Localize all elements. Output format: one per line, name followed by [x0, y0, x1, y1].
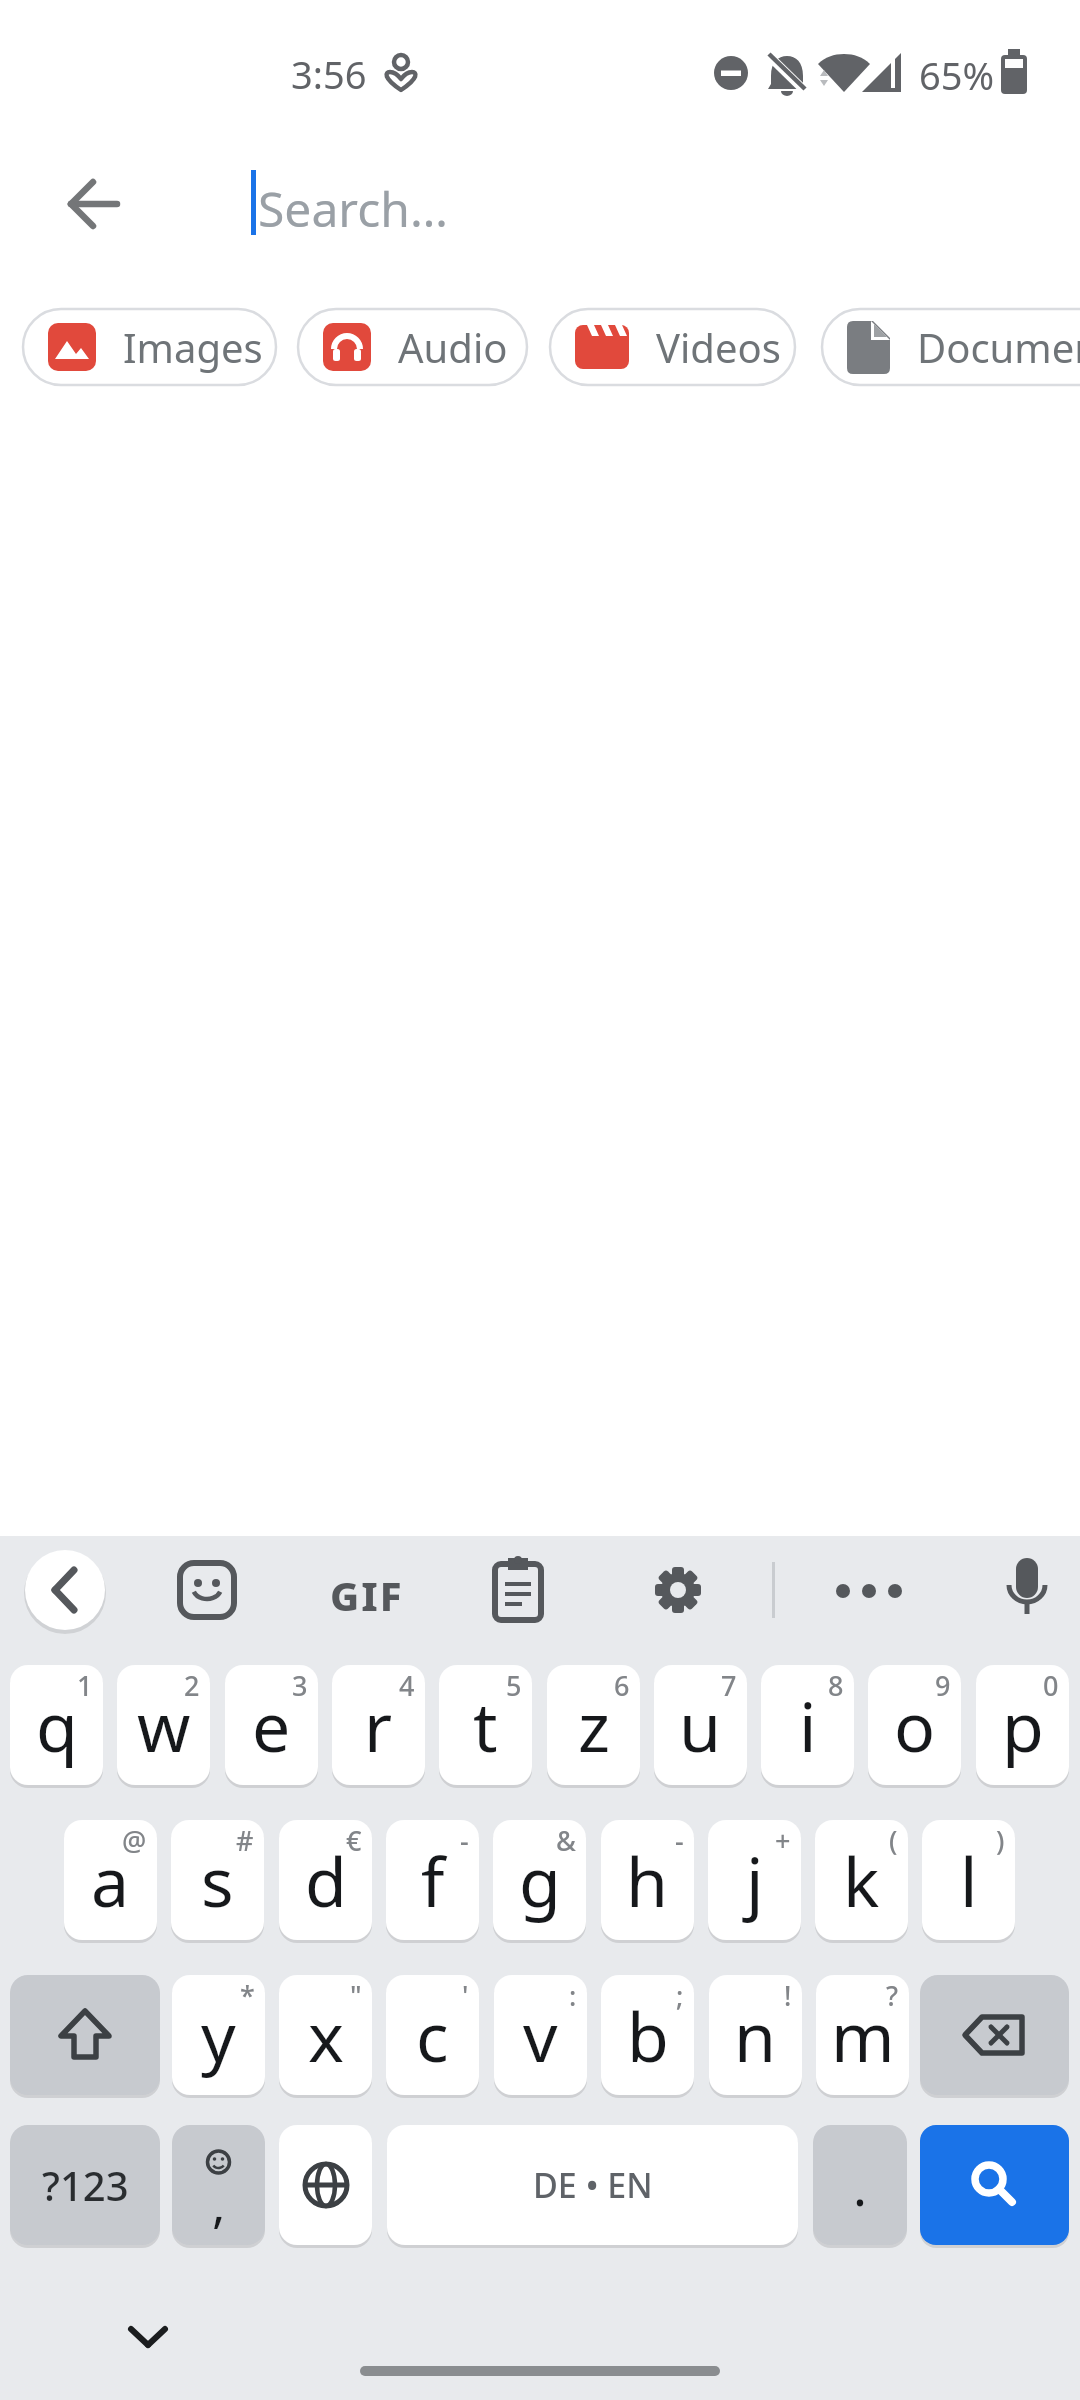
- staticText: k: [843, 1834, 880, 1927]
- button[interactable]: w: [117, 1665, 210, 1785]
- staticText: 7: [721, 1667, 737, 1704]
- staticText: r: [364, 1679, 393, 1772]
- button[interactable]: [987, 1550, 1067, 1630]
- button[interactable]: p: [976, 1665, 1069, 1785]
- staticText: d: [305, 1834, 347, 1927]
- button[interactable]: [10, 1975, 160, 2095]
- staticText: ?: [886, 1977, 899, 2014]
- staticText: c: [416, 1989, 449, 2082]
- staticText: .: [853, 2150, 867, 2221]
- staticText: 6: [614, 1667, 630, 1704]
- button[interactable]: i: [761, 1665, 854, 1785]
- staticText: m: [831, 1989, 895, 2082]
- staticText: 0: [1043, 1667, 1059, 1704]
- button[interactable]: Audio: [297, 308, 528, 386]
- button[interactable]: Images: [22, 308, 277, 386]
- button[interactable]: Documents: [821, 308, 1080, 386]
- button[interactable]: u: [654, 1665, 747, 1785]
- button[interactable]: s: [171, 1820, 264, 1940]
- staticText: a: [91, 1834, 130, 1927]
- staticText: &: [556, 1822, 576, 1859]
- staticText: -: [460, 1822, 469, 1859]
- staticText: #: [236, 1822, 254, 1859]
- button[interactable]: [920, 1975, 1069, 2095]
- button[interactable]: [322, 1550, 406, 1630]
- button[interactable]: g: [493, 1820, 586, 1940]
- button[interactable]: j: [708, 1820, 801, 1940]
- staticText: 4: [399, 1667, 415, 1704]
- button[interactable]: Videos: [549, 308, 796, 386]
- staticText: x: [308, 1989, 344, 2082]
- staticText: 2: [184, 1667, 200, 1704]
- staticText: ?123: [42, 2158, 129, 2212]
- staticText: DE • EN: [533, 2162, 653, 2208]
- staticText: 8: [828, 1667, 844, 1704]
- button[interactable]: a: [64, 1820, 157, 1940]
- staticText: ,: [212, 2170, 226, 2238]
- staticText: €: [346, 1822, 362, 1859]
- staticText: 65%: [919, 49, 995, 101]
- button[interactable]: [829, 1550, 909, 1630]
- button[interactable]: [55, 164, 135, 244]
- staticText: 9: [935, 1667, 951, 1704]
- button[interactable]: c: [386, 1975, 479, 2095]
- staticText: ): [996, 1822, 1005, 1859]
- staticText: ;: [676, 1977, 684, 2014]
- staticText: Audio: [398, 320, 508, 374]
- staticText: *: [240, 1977, 255, 2014]
- staticText: t: [473, 1679, 498, 1772]
- button[interactable]: x: [279, 1975, 372, 2095]
- staticText: !: [784, 1977, 792, 2014]
- button[interactable]: [638, 1550, 718, 1630]
- staticText: Search…: [258, 176, 448, 241]
- button[interactable]: e: [225, 1665, 318, 1785]
- button[interactable]: o: [868, 1665, 961, 1785]
- button[interactable]: n: [709, 1975, 802, 2095]
- button[interactable]: q: [10, 1665, 103, 1785]
- staticText: u: [679, 1679, 722, 1772]
- staticText: q: [36, 1679, 78, 1772]
- staticText: 3: [292, 1667, 308, 1704]
- staticText: g: [519, 1834, 561, 1927]
- staticText: f: [421, 1834, 445, 1927]
- button[interactable]: f: [386, 1820, 479, 1940]
- staticText: +: [775, 1822, 791, 1859]
- button[interactable]: [240, 150, 940, 260]
- staticText: -: [675, 1822, 684, 1859]
- button[interactable]: ?123: [10, 2125, 160, 2245]
- button[interactable]: [167, 1550, 247, 1630]
- staticText: Documents: [917, 320, 1080, 374]
- button[interactable]: k: [815, 1820, 908, 1940]
- button[interactable]: [110, 2310, 186, 2370]
- button[interactable]: [920, 2125, 1069, 2245]
- staticText: 3:56: [291, 48, 367, 100]
- button[interactable]: [279, 2125, 372, 2245]
- button[interactable]: v: [494, 1975, 587, 2095]
- button[interactable]: t: [439, 1665, 532, 1785]
- staticText: ': [462, 1977, 469, 2014]
- button[interactable]: y: [172, 1975, 265, 2095]
- staticText: 1: [77, 1667, 93, 1704]
- button[interactable]: ,: [172, 2125, 265, 2245]
- staticText: y: [201, 1989, 236, 2082]
- button[interactable]: l: [922, 1820, 1015, 1940]
- button[interactable]: r: [332, 1665, 425, 1785]
- staticText: ": [350, 1977, 362, 2014]
- button[interactable]: d: [279, 1820, 372, 1940]
- button[interactable]: [25, 1550, 105, 1630]
- staticText: v: [523, 1989, 558, 2082]
- staticText: z: [578, 1679, 610, 1772]
- button[interactable]: DE • EN: [387, 2125, 798, 2245]
- button[interactable]: b: [601, 1975, 694, 2095]
- button[interactable]: [478, 1550, 558, 1630]
- button[interactable]: m: [816, 1975, 909, 2095]
- staticText: p: [1002, 1679, 1044, 1772]
- staticText: 5: [506, 1667, 522, 1704]
- staticText: w: [137, 1679, 191, 1772]
- staticText: GIF: [330, 1568, 404, 1622]
- button[interactable]: h: [601, 1820, 694, 1940]
- staticText: e: [252, 1679, 291, 1772]
- button[interactable]: .: [813, 2125, 907, 2245]
- staticText: o: [894, 1679, 936, 1772]
- button[interactable]: z: [547, 1665, 640, 1785]
